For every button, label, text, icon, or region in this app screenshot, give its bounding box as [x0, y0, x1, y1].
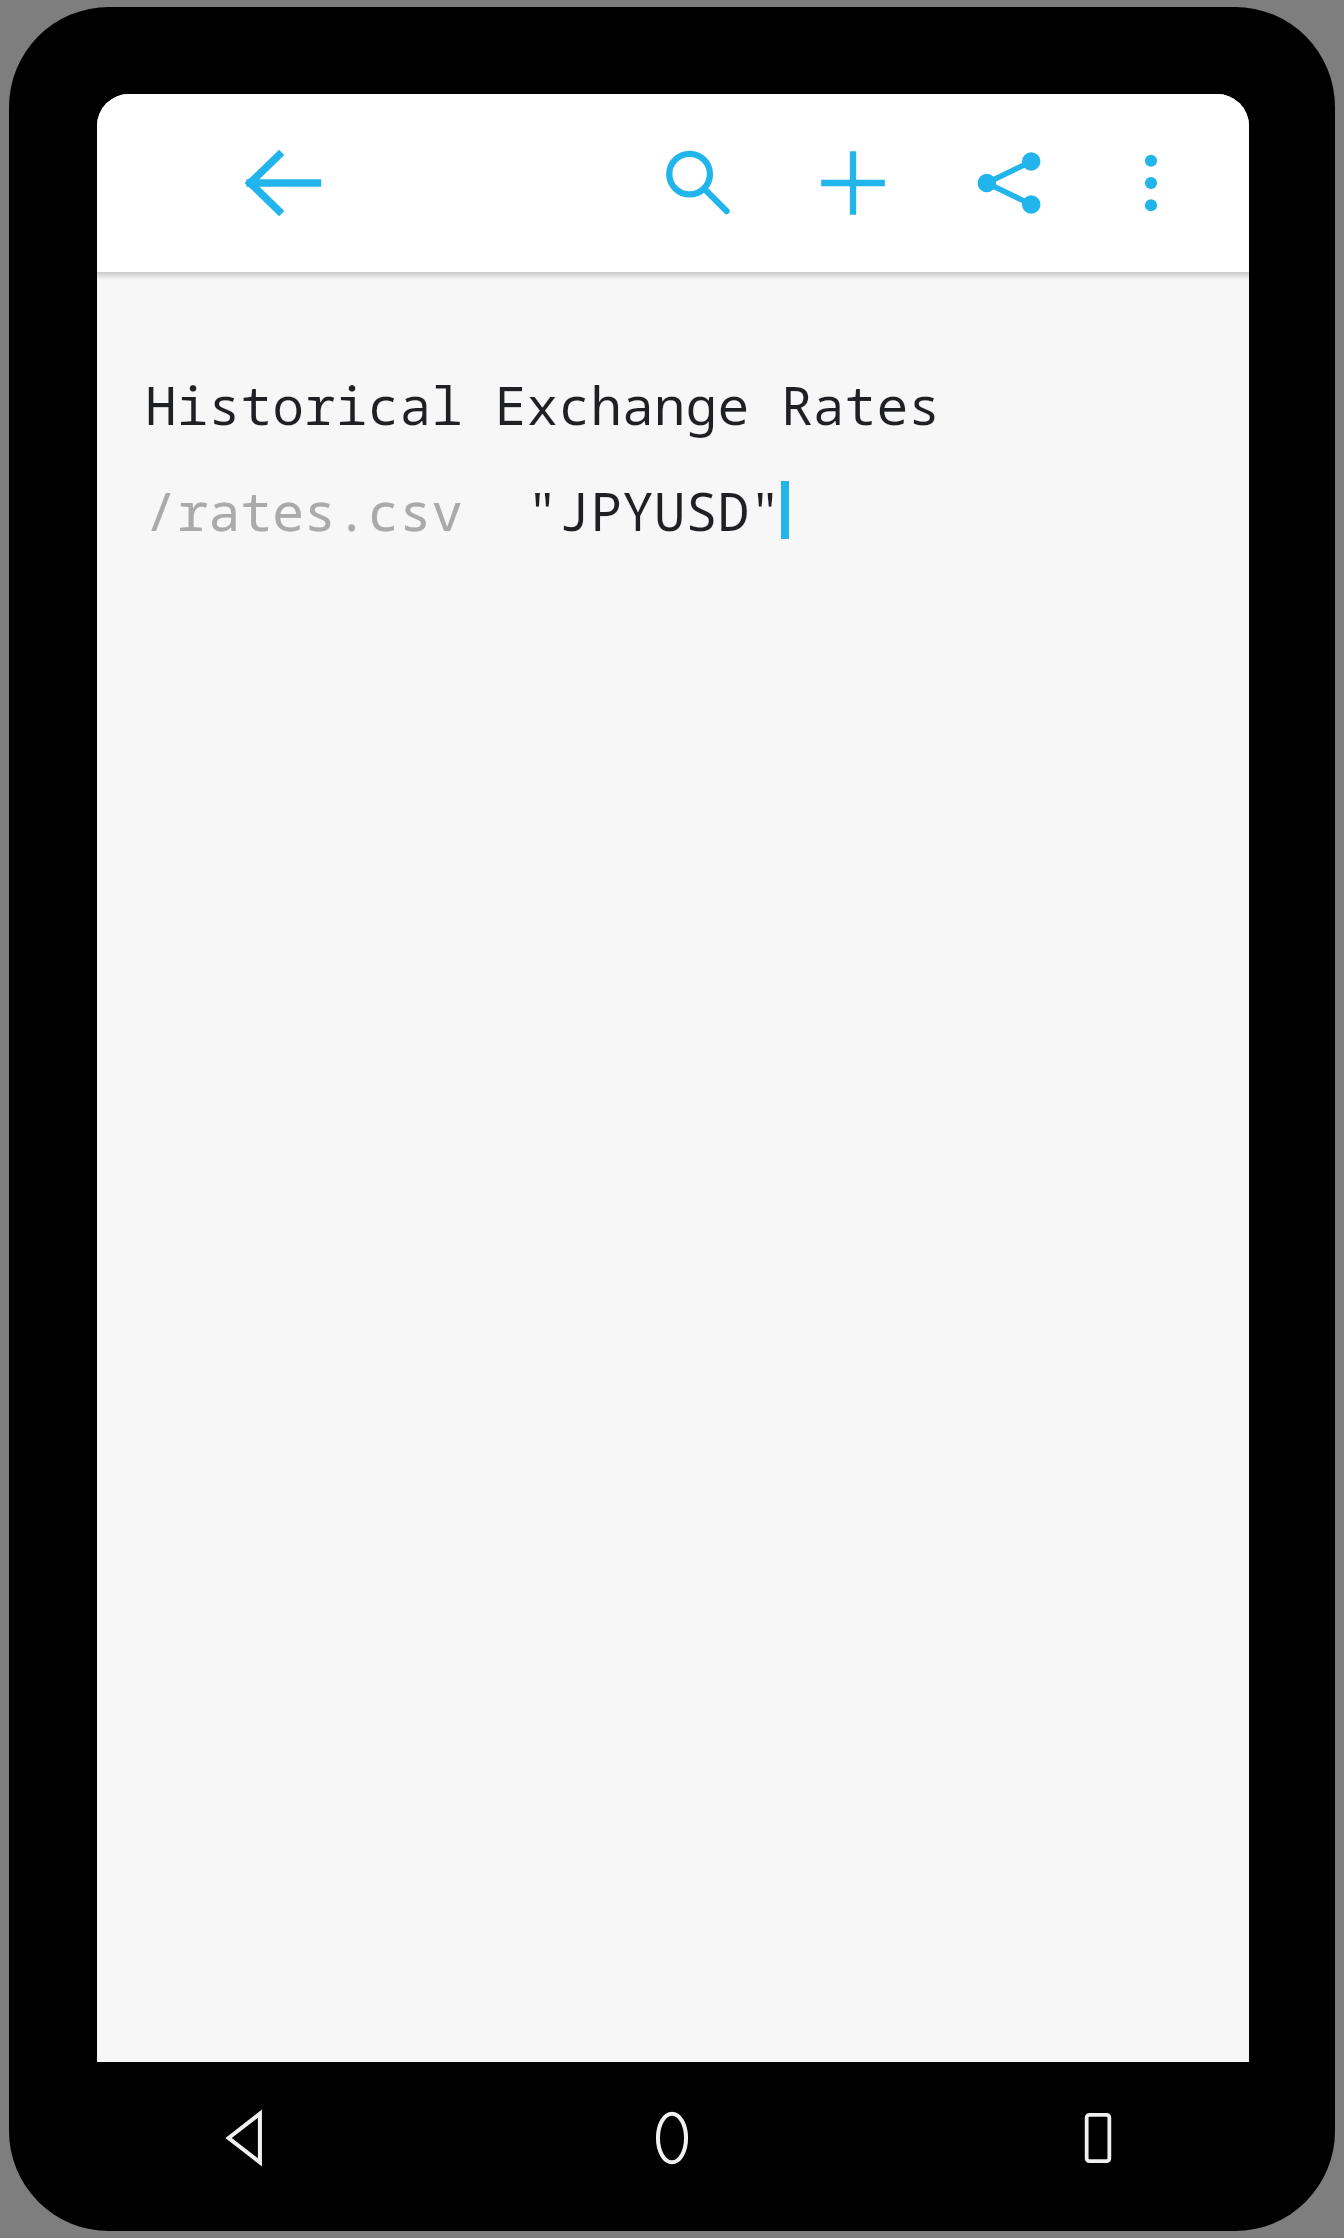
button[interactable]: Share: [945, 119, 1073, 247]
button[interactable]: Back: [190, 2082, 302, 2194]
staticText: /rates.csv "JPYUSD": [145, 474, 781, 546]
staticText: Historical Exchange Rates: [145, 368, 940, 440]
button[interactable]: Home: [616, 2082, 728, 2194]
button[interactable]: Add: [789, 119, 917, 247]
button[interactable]: More options: [1087, 119, 1215, 247]
button[interactable]: Recent apps: [1042, 2082, 1154, 2194]
button[interactable]: Search: [633, 119, 761, 247]
button[interactable]: Navigate up: [219, 119, 347, 247]
